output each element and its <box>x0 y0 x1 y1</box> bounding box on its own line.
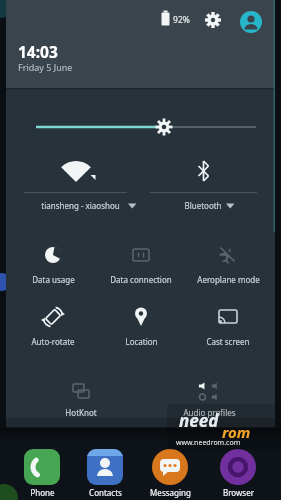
staticText: Cast screen <box>206 336 250 347</box>
staticText: www.needrom.com <box>176 438 241 448</box>
button[interactable]: Phone <box>18 446 66 498</box>
staticText: Audio profiles <box>183 407 236 418</box>
button[interactable]: Aeroplane mode <box>185 240 271 288</box>
button[interactable] <box>145 152 265 217</box>
button[interactable] <box>26 112 266 142</box>
staticText: Browser <box>223 487 254 498</box>
staticText: need <box>179 409 219 432</box>
staticText: Bluetooth <box>184 200 222 211</box>
staticText: Phone <box>30 487 55 498</box>
staticText: 14:03 <box>18 41 58 62</box>
button[interactable]: Data connection <box>98 240 184 288</box>
staticText: Aeroplane mode <box>197 274 260 285</box>
button[interactable]: Data usage <box>10 240 96 288</box>
button[interactable]: Cast screen <box>185 302 271 350</box>
staticText: Auto-rotate <box>31 336 75 347</box>
staticText: Data usage <box>32 274 75 285</box>
staticText: Location <box>125 336 158 347</box>
staticText: HotKnot <box>65 407 97 418</box>
button[interactable]: Browser <box>214 446 262 498</box>
button[interactable]: HotKnot <box>38 376 124 424</box>
button[interactable] <box>16 152 136 217</box>
staticText: Friday 5 June <box>18 61 73 73</box>
button[interactable] <box>202 9 224 31</box>
staticText: 92% <box>173 14 190 26</box>
staticText: tiansheng - xiaoshou <box>41 200 120 211</box>
button[interactable]: Contacts <box>81 446 129 498</box>
button[interactable]: Audio profiles <box>166 376 252 424</box>
staticText: rom <box>222 422 251 442</box>
staticText: Data connection <box>110 274 172 285</box>
button[interactable]: Messaging <box>146 446 194 498</box>
staticText: Messaging <box>150 487 191 498</box>
button[interactable]: Location <box>98 302 184 350</box>
staticText: Contacts <box>89 487 122 498</box>
button[interactable] <box>240 11 262 33</box>
button[interactable]: Auto-rotate <box>10 302 96 350</box>
